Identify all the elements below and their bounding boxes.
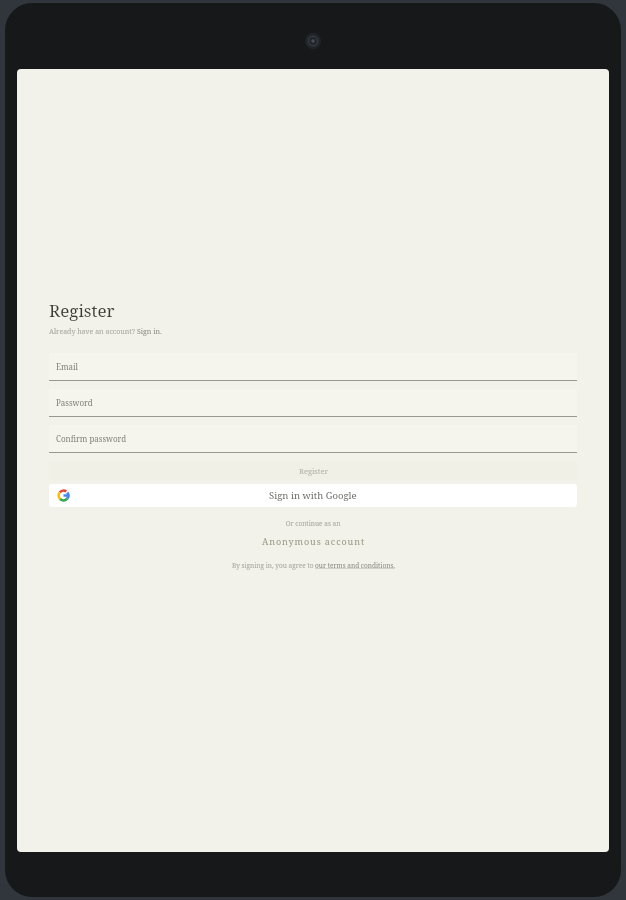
button[interactable]: Already have an account? xyxy=(49,327,162,337)
button[interactable]: Register xyxy=(49,462,577,480)
button[interactable]: Anonymous account xyxy=(49,535,577,547)
button[interactable]: Email xyxy=(49,353,577,381)
staticText: Sign in with Google xyxy=(269,489,357,502)
button[interactable]: Password xyxy=(49,389,577,417)
button[interactable]: Confirm password xyxy=(49,425,577,453)
staticText: Register xyxy=(299,466,328,476)
staticText: Or continue as an xyxy=(49,519,577,528)
staticText: Confirm password xyxy=(56,433,127,444)
button[interactable]: Sign in with Google xyxy=(49,484,577,507)
other: Google logo xyxy=(58,490,69,501)
staticText: Password xyxy=(56,397,93,408)
staticText: Email xyxy=(56,361,79,372)
button[interactable]: By signing in, you agree to our terms an… xyxy=(49,561,577,570)
staticText: By signing in, you agree to our terms an… xyxy=(232,561,395,570)
staticText: Sign in. xyxy=(137,327,162,337)
staticText: Already have an account? xyxy=(49,327,137,337)
staticText: Anonymous account xyxy=(262,535,365,547)
staticText: Register xyxy=(49,299,115,322)
